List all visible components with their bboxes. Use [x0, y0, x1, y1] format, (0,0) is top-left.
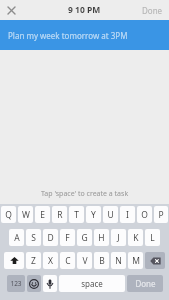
button[interactable]: space	[59, 275, 125, 292]
button[interactable]: Emoji	[27, 275, 41, 292]
button[interactable]: C	[60, 252, 75, 269]
button[interactable]: A	[9, 229, 24, 246]
button[interactable]: E	[35, 206, 50, 223]
button[interactable]: M	[128, 252, 143, 269]
button[interactable]: Voice input	[43, 275, 57, 292]
button[interactable]: O	[137, 206, 152, 223]
staticText: H	[98, 232, 105, 244]
button[interactable]: T	[69, 206, 84, 223]
button[interactable]: U	[103, 206, 118, 223]
button[interactable]: X	[43, 252, 58, 269]
button[interactable]: V	[77, 252, 92, 269]
staticText: L	[150, 232, 155, 244]
button[interactable]: H	[94, 229, 109, 246]
staticText: D	[47, 232, 54, 244]
button[interactable]: B	[94, 252, 109, 269]
button[interactable]: 123	[7, 275, 25, 292]
staticText: X	[48, 255, 53, 267]
button[interactable]: F	[60, 229, 75, 246]
button[interactable]: L	[145, 229, 160, 246]
staticText: A	[14, 232, 20, 244]
staticText: 123	[10, 279, 22, 288]
button[interactable]: Z	[26, 252, 41, 269]
button[interactable]: Backspace	[145, 252, 165, 269]
staticText: Done	[135, 278, 156, 289]
staticText: M	[132, 255, 140, 267]
button[interactable]: I	[120, 206, 135, 223]
button[interactable]: D	[43, 229, 58, 246]
staticText: T	[74, 209, 79, 221]
staticText: O	[141, 209, 148, 221]
staticText: Plan my week tomorrow at 3PM	[8, 30, 128, 41]
staticText: C	[65, 255, 71, 267]
staticText: Y	[91, 209, 96, 221]
staticText: 9 10 PM	[68, 4, 101, 16]
staticText: U	[107, 209, 114, 221]
staticText: W	[22, 209, 30, 221]
button[interactable]: R	[52, 206, 67, 223]
button[interactable]: Done	[142, 5, 163, 16]
button[interactable]: P	[154, 206, 168, 223]
button[interactable]: S	[26, 229, 41, 246]
staticText: V	[82, 255, 88, 267]
staticText: J	[117, 232, 120, 244]
button[interactable]: K	[128, 229, 143, 246]
button[interactable]: Close	[0, 0, 22, 20]
staticText: P	[158, 209, 164, 221]
button[interactable]: Shift	[4, 252, 24, 269]
button[interactable]: G	[77, 229, 92, 246]
staticText: B	[99, 255, 105, 267]
button[interactable]: Done	[127, 275, 163, 292]
staticText: Z	[31, 255, 36, 267]
button[interactable]: N	[111, 252, 126, 269]
staticText: K	[133, 232, 139, 244]
staticText: R	[57, 209, 63, 221]
staticText: G	[81, 232, 88, 244]
staticText: space	[81, 278, 103, 289]
button[interactable]: Y	[86, 206, 101, 223]
button[interactable]: J	[111, 229, 126, 246]
staticText: Tap 'space' to create a task	[41, 189, 129, 199]
staticText: E	[40, 209, 45, 221]
staticText: Q	[5, 209, 12, 221]
staticText: Done	[142, 5, 163, 16]
staticText: F	[65, 232, 70, 244]
button[interactable]: Q	[1, 206, 16, 223]
button[interactable]: W	[18, 206, 33, 223]
staticText: N	[115, 255, 122, 267]
button[interactable]: Plan my week tomorrow at 3PM	[0, 20, 169, 50]
staticText: S	[31, 232, 36, 244]
staticText: I	[126, 209, 129, 221]
